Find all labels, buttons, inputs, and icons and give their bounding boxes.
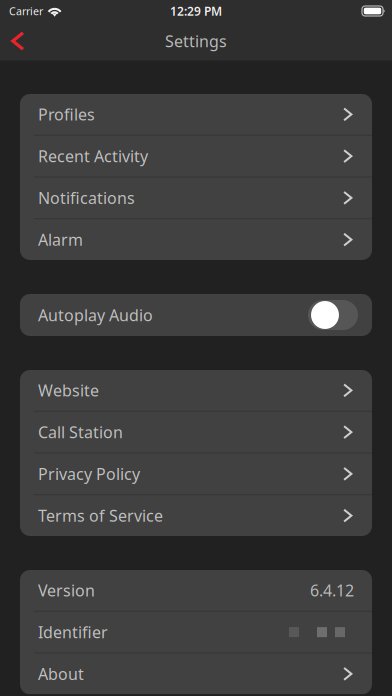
staticText: 6.4.12 xyxy=(310,580,354,601)
staticText: Profiles xyxy=(38,104,95,125)
button[interactable]: Privacy Policy xyxy=(20,453,372,494)
staticText: Carrier xyxy=(9,4,43,18)
staticText: Terms of Service xyxy=(38,505,163,526)
staticText: Recent Activity xyxy=(38,145,148,167)
button[interactable]: Website xyxy=(20,370,372,411)
staticText: Notifications xyxy=(38,187,135,208)
button[interactable]: Back xyxy=(0,22,39,60)
staticText: Call Station xyxy=(38,421,123,443)
button[interactable]: Notifications xyxy=(20,177,372,218)
button[interactable]: Recent Activity xyxy=(20,136,372,177)
button[interactable]: Profiles xyxy=(20,94,372,135)
staticText: 12:29 PM xyxy=(170,3,222,19)
staticText: About xyxy=(38,663,84,684)
button[interactable]: About xyxy=(20,653,372,694)
staticText: Settings xyxy=(165,30,227,52)
button[interactable]: Terms of Service xyxy=(20,495,372,536)
button[interactable]: Call Station xyxy=(20,412,372,453)
staticText: Website xyxy=(38,380,99,401)
staticText: Version xyxy=(38,580,95,601)
staticText: Privacy Policy xyxy=(38,463,140,484)
button[interactable]: Autoplay Audio xyxy=(308,300,358,330)
staticText: Autoplay Audio xyxy=(38,304,153,326)
button[interactable]: Alarm xyxy=(20,219,372,260)
staticText: Identifier xyxy=(38,621,108,643)
staticText: Alarm xyxy=(38,229,83,250)
